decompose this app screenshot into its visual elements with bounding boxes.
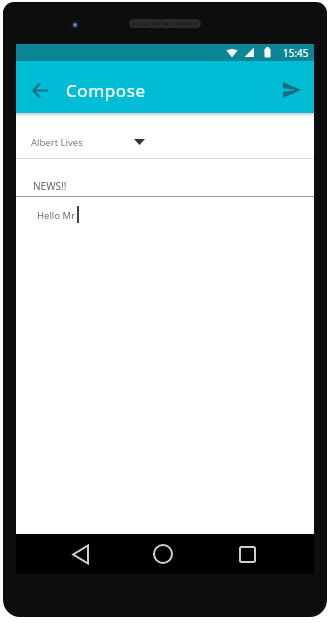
staticText: Albert Lives bbox=[31, 136, 83, 149]
button[interactable] bbox=[223, 534, 271, 574]
button[interactable] bbox=[139, 534, 187, 574]
button[interactable] bbox=[24, 74, 56, 106]
staticText: Compose bbox=[66, 79, 146, 102]
button[interactable]: Hello Mr bbox=[16, 197, 314, 233]
staticText: Hello Mr bbox=[37, 209, 76, 222]
staticText: NEWS!! bbox=[33, 179, 67, 193]
button[interactable]: Albert Lives bbox=[16, 113, 314, 158]
button[interactable] bbox=[56, 534, 104, 574]
staticText: 15:45 bbox=[283, 46, 309, 60]
button[interactable]: NEWS!! bbox=[16, 159, 314, 196]
button[interactable] bbox=[278, 76, 306, 104]
